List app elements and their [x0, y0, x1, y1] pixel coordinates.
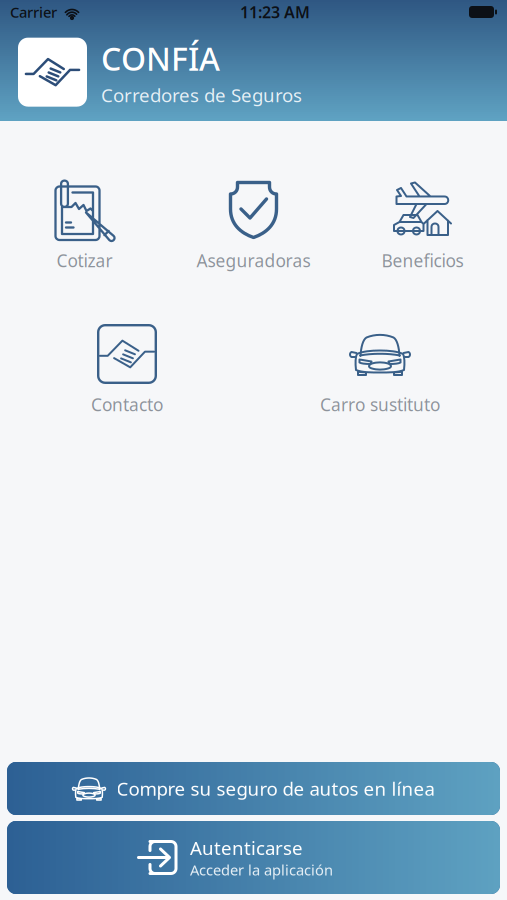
button[interactable]: Beneficios: [338, 180, 507, 272]
button[interactable]: Carro sustituto: [253, 324, 506, 416]
button[interactable]: Autenticarse: [7, 821, 500, 894]
staticText: Acceder la aplicación: [190, 860, 333, 880]
button[interactable]: Contacto: [0, 324, 253, 416]
staticText: Carrier: [10, 2, 57, 22]
button[interactable]: Cotizar: [0, 180, 169, 272]
button[interactable]: Aseguradoras: [169, 180, 338, 272]
staticText: CONFÍA: [101, 37, 220, 79]
staticText: Autenticarse: [190, 835, 303, 860]
staticText: Beneficios: [381, 249, 463, 272]
staticText: Carro sustituto: [320, 393, 440, 416]
button[interactable]: Compre su seguro de autos en línea: [7, 762, 500, 815]
staticText: Aseguradoras: [196, 249, 310, 272]
staticText: Cotizar: [56, 249, 112, 272]
staticText: Contacto: [91, 393, 163, 416]
staticText: Corredores de Seguros: [101, 82, 302, 107]
staticText: 11:23 AM: [240, 1, 310, 23]
staticText: Compre su seguro de autos en línea: [116, 776, 434, 801]
